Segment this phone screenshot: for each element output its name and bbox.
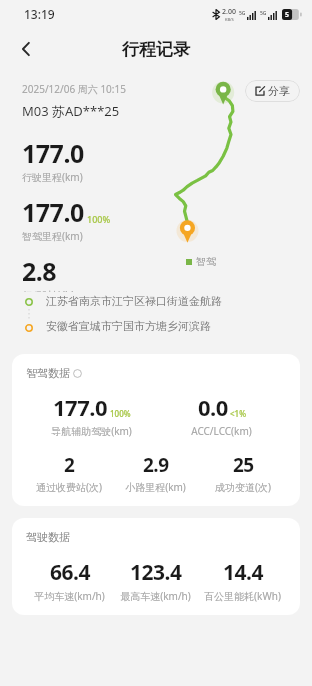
staticText: 平均车速(km/h) <box>34 589 105 603</box>
staticText: 百公里能耗(kWh) <box>204 589 281 603</box>
staticText: 25 <box>233 452 254 478</box>
staticText: 小路里程(km) <box>125 480 186 494</box>
staticText: 100% <box>87 213 111 225</box>
staticText: 2 <box>64 452 75 478</box>
staticText: 5G <box>239 10 246 17</box>
staticText: 导航辅助驾驶(km) <box>51 424 132 438</box>
staticText: 江苏省南京市江宁区禄口街道金航路 <box>46 294 222 308</box>
staticText: 分享 <box>268 84 290 98</box>
button[interactable]: 智驾数据 <box>12 354 300 506</box>
staticText: 智驾数据 <box>26 366 70 380</box>
staticText: 成功变道(次) <box>215 480 271 494</box>
staticText: 行程记录 <box>122 39 190 60</box>
staticText: 最高车速(km/h) <box>120 589 191 603</box>
staticText: 100% <box>110 408 131 419</box>
staticText: 66.4 <box>50 558 90 587</box>
staticText: 2.00 <box>222 7 236 17</box>
staticText: 驾驶数据 <box>26 530 70 544</box>
staticText: 123.4 <box>130 558 182 587</box>
staticText: 智驾 <box>196 255 216 268</box>
staticText: 2.9 <box>143 452 169 478</box>
staticText: 智驾里程(km) <box>22 229 83 243</box>
staticText: 177.0 <box>53 392 108 422</box>
staticText: 5G <box>260 10 267 17</box>
staticText: 2025/12/06 周六 10:15 <box>22 82 126 96</box>
staticText: 安徽省宣城市宁国市方塘乡河滨路 <box>46 319 211 333</box>
staticText: 5 <box>285 10 290 20</box>
staticText: 通过收费站(次) <box>36 480 102 494</box>
staticText: M03 苏AD***25 <box>22 102 120 120</box>
staticText: KB/S <box>225 17 234 22</box>
staticText: 13:19 <box>24 6 55 22</box>
staticText: 2.8 <box>22 254 57 288</box>
staticText: ACC/LCC(km) <box>191 424 252 438</box>
staticText: 177.0 <box>22 195 84 229</box>
button[interactable]: 分享 <box>245 80 300 102</box>
button[interactable]: 驾驶数据 <box>12 518 300 615</box>
staticText: 0.0 <box>198 392 228 422</box>
staticText: 14.4 <box>223 558 263 587</box>
staticText: 177.0 <box>22 136 84 170</box>
staticText: <1% <box>230 408 246 419</box>
staticText: 行驶里程(km) <box>22 170 83 184</box>
button[interactable]: Back <box>8 31 44 67</box>
staticText: 行程时长(h) <box>22 288 75 292</box>
